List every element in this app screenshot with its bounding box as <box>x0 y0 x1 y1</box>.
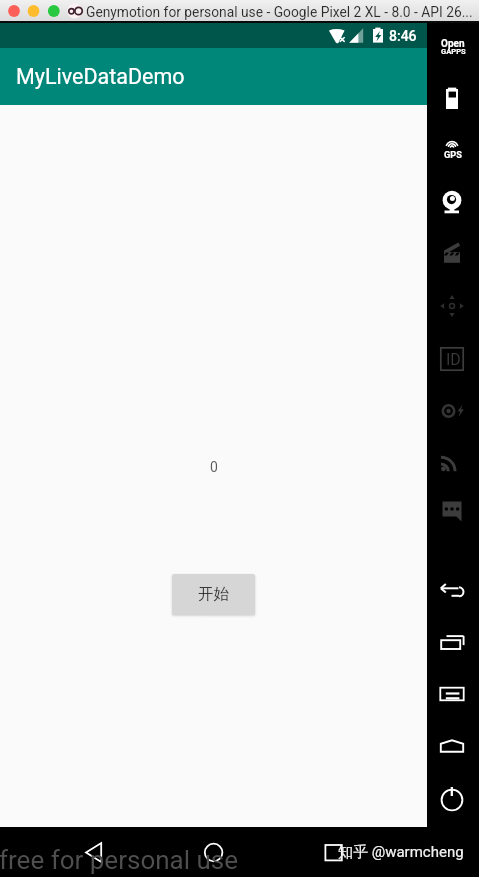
button[interactable]: Back <box>427 569 479 611</box>
button[interactable]: Messages <box>427 490 479 532</box>
button[interactable]: Home <box>427 725 479 767</box>
staticText: MyLiveDataDemo <box>16 64 185 89</box>
button[interactable]: Record video <box>427 230 479 272</box>
staticText: ID <box>446 350 461 369</box>
staticText: GPS <box>444 149 462 160</box>
button[interactable]: Keyboard <box>427 673 479 715</box>
button[interactable]: Home <box>190 829 237 876</box>
staticText: 开始 <box>198 584 229 604</box>
staticText: Genymotion for personal use - Google Pix… <box>86 4 473 20</box>
staticText: GAPPS <box>441 47 466 56</box>
button[interactable]: Rotate <box>427 285 479 327</box>
staticText: 0 <box>210 459 218 475</box>
button[interactable]: 开始 <box>172 574 255 615</box>
staticText: 8:46 <box>389 28 417 44</box>
staticText: 知乎 @warmcheng <box>338 843 464 862</box>
button[interactable]: Identifiers <box>427 338 479 380</box>
staticText: Open <box>441 38 465 50</box>
button[interactable]: Back <box>70 829 117 876</box>
button[interactable]: Power off <box>427 779 479 821</box>
button[interactable]: Recent apps <box>310 829 357 876</box>
button[interactable]: Network <box>427 440 479 482</box>
button[interactable]: Battery <box>427 78 479 120</box>
staticText: free for personal use <box>0 845 239 875</box>
button[interactable]: Open <box>427 38 479 62</box>
button[interactable]: Camera <box>427 179 479 221</box>
button[interactable]: Recent apps <box>427 621 479 663</box>
button[interactable]: GPS <box>427 128 479 170</box>
button[interactable]: Disk IO <box>427 390 479 432</box>
